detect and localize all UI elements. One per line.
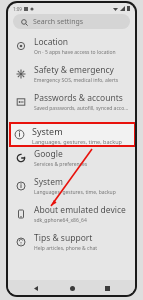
staticText: Tips & support <box>34 232 93 244</box>
staticText: Digital Wellbeing <box>34 120 102 132</box>
button[interactable]: System <box>8 172 135 200</box>
button[interactable]: Tips & support <box>8 228 135 256</box>
staticText: Emergency SOS, medical info, alerts <box>34 77 119 84</box>
staticText: 1:09 <box>13 6 22 12</box>
staticText: Google <box>34 148 63 160</box>
staticText: About emulated device <box>34 204 126 216</box>
staticText: sdk_gphone64_x86_64 <box>34 217 87 224</box>
staticText: Screen time, app timers, bedtime schedul… <box>34 133 129 140</box>
button[interactable]: Recents <box>100 281 114 295</box>
button[interactable]: Back <box>29 281 43 295</box>
staticText: Help articles, phone & chat <box>34 245 98 252</box>
button[interactable]: Search settings <box>13 14 130 29</box>
staticText: Location <box>34 36 69 48</box>
button[interactable]: Home <box>65 281 79 295</box>
staticText: System <box>32 125 63 137</box>
staticText: Passwords & accounts <box>34 92 123 104</box>
staticText: Languages, gestures, time, backup <box>32 138 122 145</box>
button[interactable]: Google <box>8 144 135 172</box>
staticText: Search settings <box>33 17 84 27</box>
staticText: Services & preferences <box>34 161 88 168</box>
button[interactable]: About emulated device <box>8 200 135 228</box>
staticText: Safety & emergency <box>34 64 114 76</box>
staticText: On · 5 apps have access to location <box>34 49 116 56</box>
button[interactable]: Location <box>8 32 135 60</box>
button[interactable]: Passwords & accounts <box>8 88 135 116</box>
staticText: Saved passwords, autofill, synced accoun… <box>34 105 129 112</box>
staticText: Languages, gestures, time, backup <box>34 189 116 196</box>
button[interactable]: Safety & emergency <box>8 60 135 88</box>
staticText: System <box>34 176 63 188</box>
button[interactable]: Digital Wellbeing <box>8 116 135 144</box>
